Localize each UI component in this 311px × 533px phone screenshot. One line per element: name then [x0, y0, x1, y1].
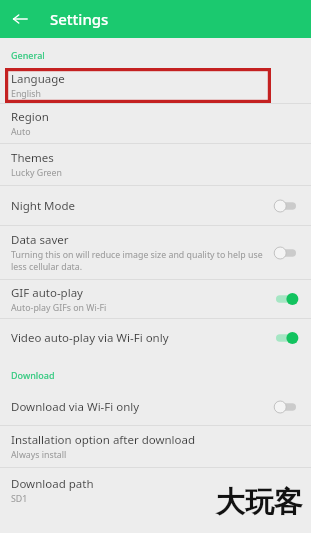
staticText: Video auto-play via Wi-Fi only	[11, 330, 169, 346]
staticText: Always install	[11, 449, 67, 461]
staticText: Data saver	[11, 232, 69, 248]
staticText: Auto	[11, 126, 31, 138]
staticText: Installation option after download	[11, 432, 196, 448]
staticText: Download path	[11, 476, 94, 492]
staticText: SD1	[11, 493, 28, 505]
staticText: Night Mode	[11, 198, 75, 214]
staticText: less cellular data.	[11, 261, 83, 273]
button[interactable]: Installation option after download	[0, 426, 311, 467]
staticText: General	[11, 49, 45, 61]
button[interactable]: Themes	[0, 144, 311, 185]
button[interactable]: Region	[0, 104, 311, 143]
staticText: Region	[11, 109, 49, 125]
button[interactable]: Download via Wi-Fi only	[0, 389, 311, 425]
button[interactable]: Night Mode	[0, 186, 311, 225]
staticText: 大玩客	[216, 484, 303, 521]
button[interactable]: Video auto-play via Wi-Fi only	[0, 319, 311, 357]
staticText: GIF auto-play	[11, 285, 83, 301]
staticText: Themes	[11, 150, 54, 166]
button[interactable]: GIF auto-play	[0, 280, 311, 318]
staticText: Turning this on will reduce image size a…	[11, 249, 263, 261]
staticText: Lucky Green	[11, 167, 62, 179]
staticText: Download via Wi-Fi only	[11, 399, 140, 415]
button[interactable]: Data saver	[0, 226, 311, 279]
button[interactable]: Download path	[0, 468, 311, 513]
button[interactable]: Language	[0, 68, 311, 103]
staticText: Language	[11, 71, 65, 87]
staticText: Auto-play GIFs on Wi-Fi	[11, 302, 107, 314]
staticText: Settings	[50, 9, 109, 29]
staticText: English	[11, 88, 41, 100]
staticText: Download	[11, 369, 55, 381]
button[interactable]: Back	[7, 6, 33, 32]
